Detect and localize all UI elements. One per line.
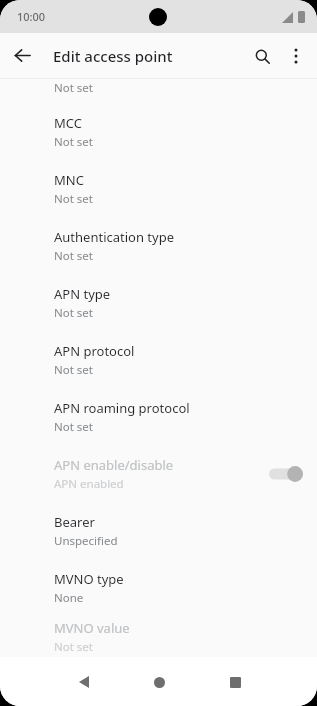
button[interactable]: APN enable/disable: [0, 445, 317, 502]
button[interactable]: Home: [145, 668, 173, 696]
staticText: MNC: [54, 171, 84, 189]
button[interactable]: Authentication type: [0, 217, 317, 274]
staticText: None: [54, 590, 84, 606]
button[interactable]: Not set: [0, 79, 317, 103]
button[interactable]: MCC: [0, 103, 317, 160]
button[interactable]: MVNO type: [0, 559, 317, 616]
button[interactable]: Back: [70, 668, 98, 696]
staticText: Not set: [54, 639, 93, 655]
staticText: 10:00: [17, 9, 46, 24]
staticText: APN protocol: [54, 342, 135, 360]
button[interactable]: MVNO value: [0, 616, 317, 657]
staticText: Not set: [54, 305, 93, 321]
button[interactable]: Back: [6, 39, 39, 72]
staticText: MVNO value: [54, 619, 130, 637]
button[interactable]: More options: [279, 39, 313, 73]
button[interactable]: APN protocol: [0, 331, 317, 388]
staticText: APN roaming protocol: [54, 399, 190, 417]
staticText: Edit access point: [53, 46, 173, 66]
staticText: APN type: [54, 285, 111, 303]
staticText: Not set: [54, 191, 93, 207]
staticText: MCC: [54, 114, 82, 132]
staticText: APN enabled: [54, 476, 124, 492]
staticText: Not set: [54, 134, 93, 150]
staticText: Not set: [54, 80, 93, 96]
button[interactable]: MNC: [0, 160, 317, 217]
staticText: APN enable/disable: [54, 456, 174, 474]
staticText: Bearer: [54, 513, 95, 531]
button[interactable]: APN type: [0, 274, 317, 331]
staticText: Unspecified: [54, 533, 118, 549]
button[interactable]: APN enable toggle: [269, 462, 303, 486]
staticText: Not set: [54, 248, 93, 264]
staticText: MVNO type: [54, 570, 124, 588]
button[interactable]: APN roaming protocol: [0, 388, 317, 445]
button[interactable]: Bearer: [0, 502, 317, 559]
staticText: Not set: [54, 419, 93, 435]
button[interactable]: Search: [245, 39, 279, 73]
staticText: Not set: [54, 362, 93, 378]
staticText: Authentication type: [54, 228, 174, 246]
button[interactable]: Recent apps: [221, 668, 249, 696]
